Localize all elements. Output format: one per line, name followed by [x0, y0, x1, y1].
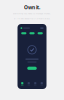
staticText: Everything you need to manage money, [13, 12, 51, 15]
button[interactable]: Tab [32, 82, 38, 85]
button[interactable]: Tab [38, 82, 45, 85]
staticText: all in one beautifully simple place. [13, 17, 50, 20]
button[interactable]: Tab [19, 82, 25, 85]
button[interactable]: Tab [25, 82, 32, 85]
button[interactable]: Get started [27, 67, 37, 70]
staticText: Own it. [24, 4, 40, 11]
